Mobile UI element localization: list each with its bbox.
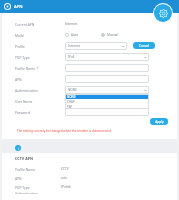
staticText: * [36,66,39,70]
staticText: Auto [71,33,79,37]
button[interactable]: Manual [101,33,119,37]
staticText: NONE [67,95,76,99]
staticText: PAP [67,105,73,109]
staticText: CCTV APN [15,156,33,161]
staticText: Profile Name [15,167,61,171]
button[interactable]: IPv4 [65,53,149,61]
staticText: Manual [107,33,119,37]
staticText: Authentication [15,88,38,92]
staticText: APN [14,4,23,10]
staticText: Current APN [15,22,35,26]
button[interactable]: CHAP [65,99,149,104]
staticText: NONE [68,88,77,92]
staticText: Internet [68,44,80,48]
staticText: PDP Type [15,55,30,59]
staticText: cctv [61,176,67,180]
staticText: Authentication [15,191,61,194]
staticText: Cancel [139,44,149,48]
staticText: PDP Type [15,185,61,189]
staticText: APN [15,77,22,81]
button[interactable]: Internet [65,42,127,50]
button[interactable] [65,108,149,116]
staticText: Internet [65,22,78,26]
button[interactable] [65,75,149,83]
staticText: Password [15,110,30,114]
button[interactable]: NONE [65,94,149,99]
staticText: The setting can only be changed when the… [17,129,168,133]
staticText: Mode [15,33,24,37]
button[interactable]: NONE [65,86,149,94]
staticText: Apply [155,120,164,124]
staticText: APN [15,176,61,180]
staticText: CCTV [61,167,69,171]
staticText: Profile [15,44,25,48]
staticText: Profile Name [15,66,36,70]
button[interactable]: Cancel [133,42,155,49]
button[interactable]: Information [15,145,21,151]
button[interactable] [65,64,149,72]
staticText: User Name [15,99,33,103]
button[interactable]: APN [4,3,11,10]
staticText: CHAP [67,100,75,104]
button[interactable]: Apply [150,118,168,125]
staticText: IPv4v6 [61,185,71,189]
staticText: IPv4 [68,55,75,59]
button[interactable]: Settings [154,4,172,22]
button[interactable]: Auto [65,33,79,37]
button[interactable]: PAP [65,104,149,109]
